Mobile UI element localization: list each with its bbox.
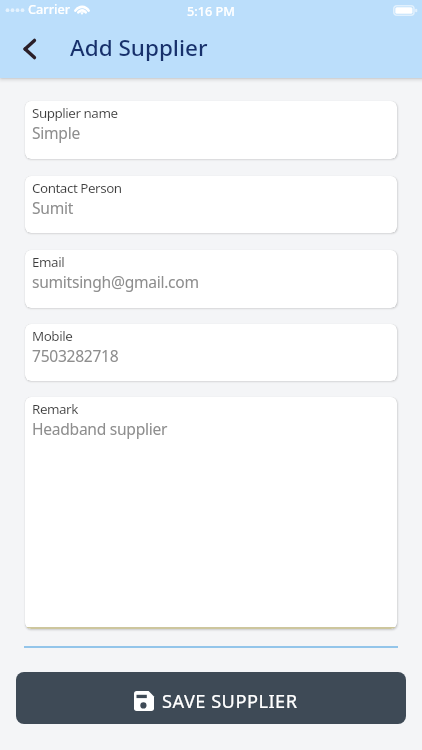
button[interactable]: Email [25,250,397,308]
staticText: Headband supplier [32,418,168,439]
staticText: Simple [32,122,80,143]
staticText: Carrier [28,0,71,17]
staticText: SAVE SUPPLIER [162,689,298,714]
staticText: Remark [32,400,78,418]
staticText: Contact Person [32,179,122,197]
button[interactable]: Mobile [25,324,397,381]
staticText: 7503282718 [32,345,119,366]
button[interactable]: Contact Person [25,176,397,233]
button[interactable]: Remark [25,397,397,629]
staticText: Add Supplier [70,32,208,63]
staticText: 5:16 PM [187,2,235,19]
staticText: sumitsingh@gmail.com [32,271,199,292]
staticText: Sumit [32,197,74,218]
button[interactable]: SAVE SUPPLIER [16,672,406,724]
button[interactable]: Back [11,28,47,70]
staticText: Mobile [32,327,73,345]
staticText: Email [32,253,65,271]
staticText: Supplier name [32,104,118,122]
button[interactable]: Supplier name [25,101,397,159]
